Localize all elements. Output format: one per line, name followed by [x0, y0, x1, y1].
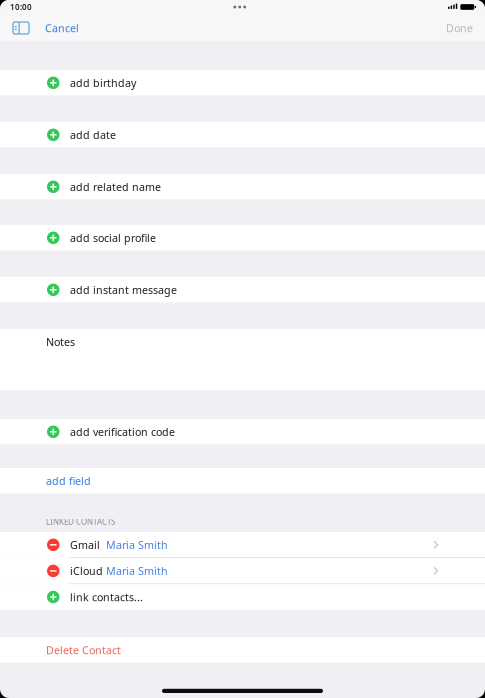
button[interactable]: Cancel [31, 14, 87, 42]
staticText: Gmail [70, 538, 100, 552]
button[interactable]: Delete Contact [0, 637, 485, 663]
button[interactable]: Done [434, 14, 485, 42]
staticText: add birthday [70, 76, 136, 90]
button[interactable]: add date [0, 122, 485, 148]
staticText: add related name [70, 180, 161, 194]
staticText: add social profile [70, 231, 156, 245]
staticText: Maria Smith [106, 538, 168, 552]
staticText: add date [70, 128, 116, 142]
button[interactable]: Show Sidebar [0, 14, 31, 42]
staticText: Done [446, 21, 473, 35]
button[interactable]: Gmail [0, 532, 485, 558]
button[interactable]: add social profile [0, 225, 485, 251]
button[interactable]: add instant message [0, 277, 485, 303]
button[interactable]: link contacts... [0, 584, 485, 610]
staticText: add instant message [70, 283, 177, 297]
staticText: Maria Smith [106, 564, 168, 578]
button[interactable]: Notes [0, 329, 485, 390]
button[interactable]: add verification code [0, 419, 485, 445]
staticText: add verification code [70, 425, 175, 439]
staticText: 10:00 [10, 2, 32, 12]
staticText: add field [46, 474, 91, 488]
button[interactable]: iCloud [0, 558, 485, 584]
button[interactable]: add field [0, 468, 485, 494]
staticText: link contacts... [70, 590, 143, 604]
staticText: Notes [46, 335, 75, 349]
staticText: Cancel [45, 21, 79, 35]
staticText: LINKED CONTACTS [46, 516, 115, 527]
button[interactable]: add related name [0, 174, 485, 200]
staticText: iCloud [70, 564, 103, 578]
button[interactable]: add birthday [0, 70, 485, 96]
staticText: Delete Contact [46, 643, 121, 657]
